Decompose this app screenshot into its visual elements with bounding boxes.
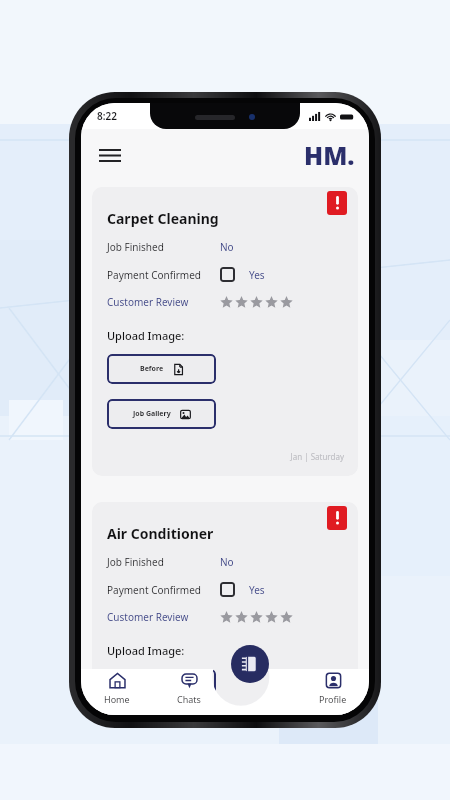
staticText: 8:22 (97, 109, 117, 123)
staticText: Home (104, 693, 130, 705)
button[interactable]: Before (107, 669, 216, 699)
staticText: Air Conditioner (107, 524, 214, 543)
staticText: Payment Confirmed (107, 268, 220, 282)
staticText: Upload Image: (107, 643, 185, 658)
button[interactable]: Payment confirmed checkbox (220, 582, 235, 597)
staticText: Upload Image: (107, 328, 185, 343)
button[interactable]: Before (107, 354, 216, 384)
staticText: Job Gallery (133, 409, 171, 419)
button[interactable]: Profile (297, 671, 369, 715)
staticText: Job Finished (107, 240, 220, 254)
button[interactable]: Jobs (231, 645, 269, 683)
staticText: Payment Confirmed (107, 583, 220, 597)
staticText: Before (140, 364, 164, 374)
staticText: Yes (249, 268, 265, 282)
staticText: Jan | Saturday (107, 451, 344, 462)
staticText: Customer Review (107, 295, 220, 309)
staticText: Carpet Cleaning (107, 209, 219, 228)
button[interactable]: Carpet Cleaning (92, 187, 358, 476)
staticText: Profile (319, 693, 347, 705)
button[interactable]: Chats (153, 671, 225, 715)
button[interactable]: HM. (304, 138, 355, 172)
button[interactable]: Alert (327, 191, 347, 215)
staticText: Yes (249, 583, 265, 597)
button[interactable]: Job Gallery (107, 399, 216, 429)
button[interactable]: Rate 5 stars (220, 296, 295, 309)
staticText: HM. (304, 138, 355, 172)
staticText: Chats (177, 693, 201, 705)
staticText: Job Finished (107, 555, 220, 569)
button[interactable]: Air Conditioner (92, 502, 358, 715)
button[interactable]: Alert (327, 506, 347, 530)
button[interactable]: Home (81, 671, 153, 715)
staticText: No (220, 240, 234, 254)
staticText: Customer Review (107, 610, 220, 624)
button[interactable]: Rate 5 stars (220, 611, 295, 624)
button[interactable]: Payment confirmed checkbox (220, 267, 235, 282)
button[interactable]: Menu (93, 142, 127, 169)
staticText: No (220, 555, 234, 569)
